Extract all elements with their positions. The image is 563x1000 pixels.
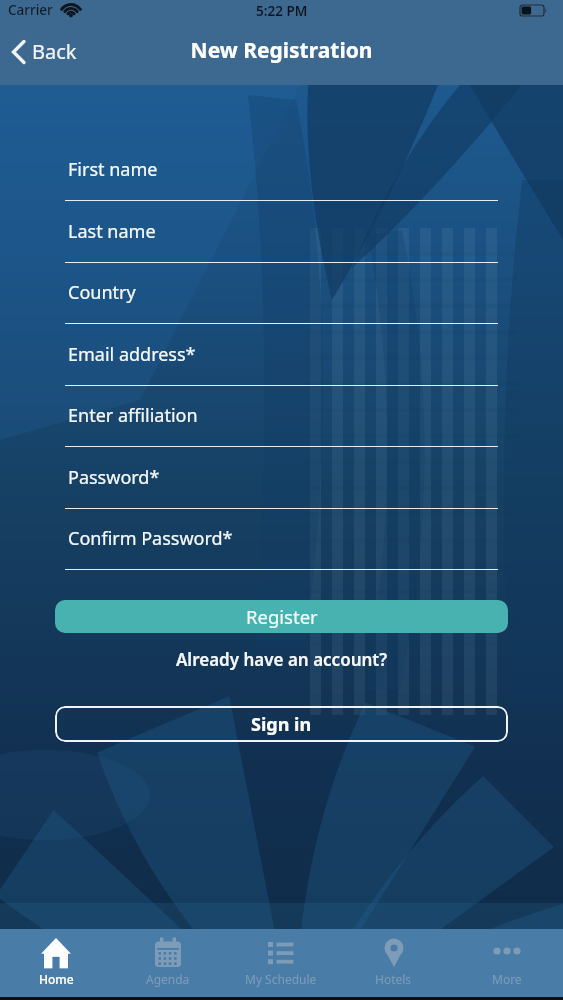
staticText: My Schedule — [245, 971, 317, 987]
staticText: Last name — [68, 219, 156, 244]
staticText: Agenda — [146, 971, 190, 987]
staticText: New Registration — [0, 36, 563, 65]
button[interactable]: Agenda — [112, 929, 224, 997]
button[interactable]: Home — [0, 929, 112, 997]
button[interactable]: Last name — [65, 219, 498, 263]
staticText: Already have an account? — [0, 648, 563, 671]
button[interactable]: More — [450, 929, 563, 997]
staticText: Enter affiliation — [68, 403, 198, 428]
button[interactable]: Sign in — [55, 706, 508, 742]
button[interactable]: Password* — [65, 465, 498, 509]
button[interactable]: Back — [6, 32, 83, 71]
staticText: Email address* — [68, 342, 196, 367]
button[interactable]: First name — [65, 157, 498, 201]
staticText: Password* — [68, 465, 160, 490]
staticText: Home — [39, 971, 74, 987]
staticText: Carrier — [8, 1, 53, 19]
staticText: Back — [32, 38, 77, 65]
button[interactable]: Country — [65, 280, 498, 324]
button[interactable]: Email address* — [65, 342, 498, 386]
staticText: More — [492, 971, 522, 987]
staticText: 5:22 PM — [256, 2, 308, 20]
button[interactable]: Register — [55, 600, 508, 633]
button[interactable]: My Schedule — [224, 929, 337, 997]
staticText: Register — [246, 604, 318, 629]
button[interactable]: Confirm Password* — [65, 526, 498, 570]
staticText: Country — [68, 280, 136, 305]
button[interactable]: Hotels — [337, 929, 450, 997]
staticText: First name — [68, 157, 158, 182]
button[interactable]: Enter affiliation — [65, 403, 498, 447]
staticText: Sign in — [251, 712, 312, 737]
staticText: Hotels — [375, 971, 412, 987]
staticText: Confirm Password* — [68, 526, 233, 551]
